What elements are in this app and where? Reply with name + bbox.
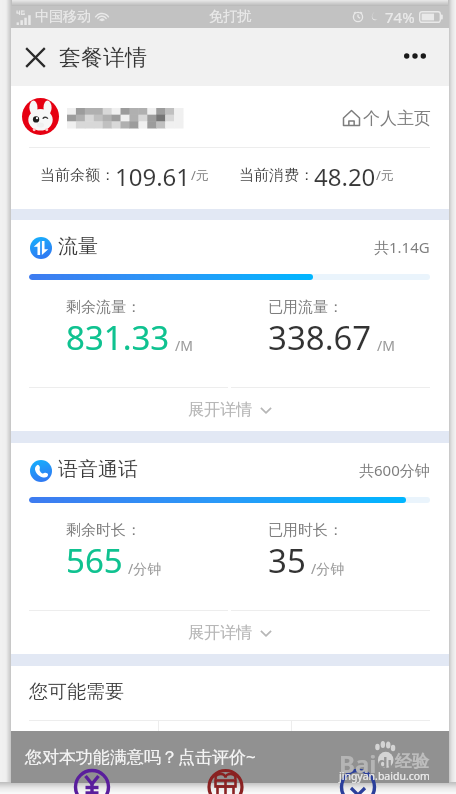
staticText: jingyan.baidu.com [339,769,430,783]
staticText: 109.61 [115,160,191,193]
staticText: 已用流量： [268,298,343,317]
button[interactable]: More options [392,36,437,75]
button[interactable]: 您对本功能满意吗？点击评价~ [11,731,449,783]
button[interactable]: Close [17,39,53,75]
staticText: /M [175,336,193,355]
button[interactable]: Services [291,721,424,783]
staticText: 套餐详情 [59,44,147,72]
staticText: /元 [191,166,209,184]
staticText: 您对本功能满意吗？点击评价~ [25,745,256,768]
staticText: 共600分钟 [359,460,430,480]
button[interactable]: Gifts [158,721,291,783]
staticText: 中国移动 [35,8,91,26]
staticText: 展开详情 [188,400,252,420]
staticText: 展开详情 [188,623,252,643]
staticText: 831.33 [66,315,170,360]
staticText: 个人主页 [363,108,431,129]
staticText: 338.67 [268,315,372,360]
staticText: /分钟 [311,559,345,578]
button[interactable]: Profile avatar [22,98,59,135]
staticText: 35 [268,538,306,583]
button[interactable]: 个人主页 [342,106,431,130]
staticText: du [378,752,398,772]
staticText: 剩余时长： [66,521,141,540]
staticText: 您可能需要 [29,680,124,704]
staticText: Bai [339,747,377,780]
staticText: /分钟 [128,559,162,578]
button[interactable]: Recharge [25,721,158,783]
staticText: 剩余流量： [66,298,141,317]
button[interactable]: 展开详情 [11,617,449,649]
staticText: /元 [376,166,394,184]
staticText: 当前余额： [40,166,115,185]
staticText: 565 [66,538,123,583]
staticText: 当前消费： [239,166,314,185]
button[interactable]: 展开详情 [11,394,449,426]
staticText: 语音通话 [58,457,138,482]
staticText: 已用时长： [268,521,343,540]
staticText: /M [377,336,395,355]
staticText: 经验 [395,751,429,772]
staticText: 74% [385,7,415,27]
staticText: 48.20 [314,160,376,193]
staticText: 免打扰 [209,8,251,26]
staticText: 共1.14G [374,237,430,257]
staticText: 流量 [58,234,98,259]
